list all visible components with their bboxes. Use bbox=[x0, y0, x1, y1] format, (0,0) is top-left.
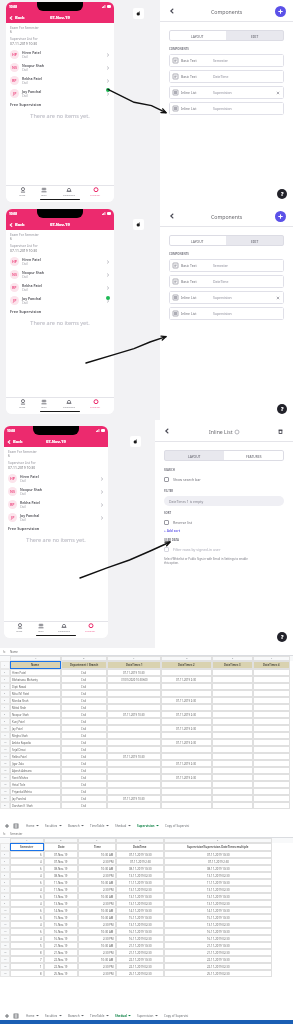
button[interactable]: RP bbox=[10, 281, 110, 294]
staticText: 07-Nov-19 bbox=[54, 860, 68, 864]
button[interactable]: Copy of Supervisi bbox=[162, 821, 193, 830]
staticText: 6 bbox=[40, 881, 42, 885]
button[interactable]: Supervision bbox=[61, 187, 77, 197]
button[interactable]: Home bbox=[23, 821, 42, 830]
button[interactable]: Baranch bbox=[65, 1011, 87, 1020]
button[interactable]: Back bbox=[168, 212, 176, 220]
button[interactable]: Show search bar bbox=[164, 474, 284, 485]
staticText: DateTime bbox=[213, 74, 229, 79]
button[interactable]: LAYOUT bbox=[164, 450, 224, 461]
button[interactable]: Back bbox=[9, 222, 25, 227]
button[interactable]: Home bbox=[17, 399, 28, 409]
button[interactable]: HP bbox=[10, 48, 110, 61]
button[interactable]: NS bbox=[10, 61, 110, 74]
button[interactable]: Scheduler bbox=[83, 623, 98, 633]
button[interactable]: LAYOUT bbox=[169, 30, 226, 41]
staticText: 07-Nov-19 bbox=[46, 439, 66, 444]
button[interactable]: Shedual bbox=[112, 1011, 134, 1020]
button[interactable]: JP bbox=[10, 294, 110, 307]
button[interactable]: Faculties bbox=[42, 1011, 65, 1020]
staticText: 10:30 AM bbox=[101, 895, 114, 899]
staticText: 13-11-2019 10:30 bbox=[207, 895, 230, 899]
button[interactable]: Supervision bbox=[56, 623, 72, 633]
button[interactable]: HP bbox=[8, 472, 104, 485]
button[interactable]: Inline List bbox=[173, 86, 280, 99]
staticText: Home bbox=[26, 824, 35, 828]
staticText: 14-11-2019 10:30 bbox=[207, 909, 230, 913]
button[interactable]: Back bbox=[163, 427, 171, 435]
button[interactable]: EDIT bbox=[226, 30, 284, 41]
button[interactable]: Home bbox=[17, 187, 28, 197]
button[interactable]: Apple bbox=[133, 8, 144, 19]
button[interactable]: Shedual bbox=[112, 821, 134, 830]
button[interactable]: Faculties bbox=[42, 821, 65, 830]
button[interactable]: Back bbox=[9, 15, 25, 20]
button[interactable]: Remove bbox=[276, 91, 280, 95]
button[interactable]: Add sheet bbox=[4, 823, 9, 828]
button[interactable]: Inline List bbox=[173, 291, 280, 304]
staticText: Semester bbox=[213, 58, 229, 63]
button[interactable]: Basic Text bbox=[173, 259, 280, 272]
staticText: EDIT bbox=[251, 34, 259, 38]
button[interactable]: Home bbox=[14, 623, 25, 633]
button[interactable]: JP bbox=[10, 87, 110, 100]
button[interactable]: Team bbox=[39, 399, 49, 409]
button[interactable]: Copy of Supervisi bbox=[161, 1011, 192, 1020]
button[interactable]: Inline List bbox=[173, 102, 280, 115]
staticText: Basic Text bbox=[181, 263, 197, 268]
button[interactable]: RP bbox=[8, 498, 104, 511]
button[interactable]: Scheduler bbox=[88, 187, 103, 197]
button[interactable]: LAYOUT bbox=[169, 235, 226, 246]
staticText: 31/01/2020 10:30h00 bbox=[121, 678, 148, 682]
button[interactable]: DateTimes 1 is empty bbox=[164, 496, 284, 506]
button[interactable]: Scheduler bbox=[88, 399, 103, 409]
staticText: 07-11-2019 10:30 bbox=[129, 853, 152, 857]
button[interactable]: JP bbox=[8, 511, 104, 524]
button[interactable]: Reverse list bbox=[164, 517, 284, 528]
button[interactable]: TimeTable bbox=[87, 1011, 112, 1020]
button[interactable]: Basic Text bbox=[173, 54, 280, 67]
staticText: DateTimes 2 bbox=[178, 663, 195, 667]
button[interactable]: Supervision bbox=[134, 821, 162, 830]
button[interactable]: Help bbox=[277, 632, 287, 642]
button[interactable]: Remove bbox=[276, 296, 280, 300]
button[interactable]: Team bbox=[39, 187, 49, 197]
staticText: 10 bbox=[4, 909, 7, 912]
button[interactable]: Home bbox=[23, 1011, 42, 1020]
button[interactable]: FEATURES bbox=[224, 450, 284, 461]
button[interactable]: All sheets bbox=[13, 823, 18, 828]
button[interactable]: NS bbox=[10, 268, 110, 281]
button[interactable]: Basic Text bbox=[173, 275, 280, 288]
button[interactable]: Basic Text bbox=[173, 70, 280, 83]
button[interactable]: Help bbox=[277, 189, 287, 199]
button[interactable]: Help bbox=[277, 404, 287, 414]
button[interactable]: TimeTable bbox=[87, 821, 112, 830]
staticText: Semester bbox=[10, 832, 23, 836]
button[interactable]: EDIT bbox=[226, 235, 284, 246]
button[interactable]: Apple bbox=[133, 219, 144, 230]
button[interactable]: Add bbox=[275, 211, 286, 222]
button[interactable]: Apple bbox=[130, 436, 141, 447]
button[interactable]: Inline List bbox=[173, 307, 280, 320]
staticText: 10:30 AM bbox=[101, 881, 114, 885]
button[interactable]: + Add sort bbox=[164, 529, 181, 533]
staticText: 4 bbox=[40, 902, 42, 906]
button[interactable]: Team bbox=[36, 623, 46, 633]
button[interactable]: Add bbox=[275, 6, 286, 17]
button[interactable]: Supervision bbox=[61, 399, 77, 409]
button[interactable]: Back bbox=[168, 7, 176, 15]
button[interactable]: Supervision bbox=[134, 1011, 161, 1020]
button[interactable]: Filter rows by signed-in user bbox=[164, 544, 284, 555]
button[interactable]: HP bbox=[10, 255, 110, 268]
button[interactable]: Add sheet bbox=[4, 1013, 9, 1018]
button[interactable]: Back bbox=[7, 439, 23, 444]
staticText: Home bbox=[19, 194, 26, 197]
staticText: 4 bbox=[40, 860, 42, 864]
staticText: Home bbox=[26, 1014, 35, 1018]
button[interactable]: Baranch bbox=[65, 821, 87, 830]
button[interactable]: NS bbox=[8, 485, 104, 498]
button[interactable]: All sheets bbox=[13, 1013, 18, 1018]
staticText: 25-11-2019 02:30 bbox=[207, 972, 230, 976]
button[interactable]: RP bbox=[10, 74, 110, 87]
button[interactable]: Delete bbox=[277, 428, 284, 435]
